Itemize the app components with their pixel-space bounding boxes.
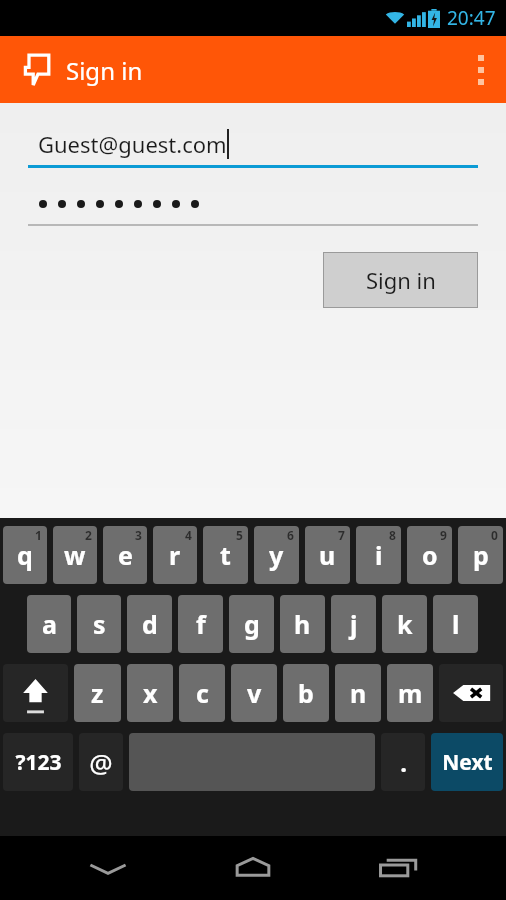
button[interactable]: p: [458, 526, 503, 584]
button[interactable]: f: [178, 595, 223, 653]
staticText: o: [422, 538, 438, 572]
button[interactable]: m: [387, 664, 433, 722]
staticText: t: [220, 538, 231, 572]
staticText: r: [169, 538, 181, 572]
button[interactable]: Backspace: [439, 664, 503, 722]
button[interactable]: k: [382, 595, 427, 653]
button[interactable]: a: [27, 595, 71, 653]
staticText: 2: [85, 527, 92, 543]
button[interactable]: r: [153, 526, 197, 584]
button[interactable]: @: [79, 733, 123, 791]
button[interactable]: w: [53, 526, 97, 584]
staticText: 0: [491, 527, 498, 543]
staticText: j: [350, 607, 358, 641]
staticText: 7: [338, 527, 345, 543]
staticText: 20:47: [447, 5, 496, 31]
staticText: 1: [35, 527, 42, 543]
button[interactable]: z: [74, 664, 121, 722]
button[interactable]: b: [283, 664, 329, 722]
staticText: 9: [440, 527, 447, 543]
staticText: m: [398, 676, 423, 710]
button[interactable]: ?123: [3, 733, 73, 791]
button[interactable]: Next: [431, 733, 503, 791]
button[interactable]: u: [305, 526, 350, 584]
button[interactable]: y: [254, 526, 299, 584]
button[interactable]: q: [3, 526, 47, 584]
staticText: Sign in: [366, 265, 436, 295]
staticText: ?123: [15, 748, 62, 777]
staticText: @: [89, 745, 113, 780]
staticText: y: [269, 538, 284, 572]
button[interactable]: Recents: [361, 836, 437, 900]
button[interactable]: d: [127, 595, 172, 653]
staticText: h: [294, 607, 311, 641]
button[interactable]: v: [231, 664, 277, 722]
button[interactable]: j: [331, 595, 376, 653]
staticText: q: [17, 538, 33, 572]
staticText: a: [42, 607, 57, 641]
button[interactable]: o: [407, 526, 452, 584]
staticText: i: [375, 538, 383, 572]
button[interactable]: t: [203, 526, 248, 584]
staticText: Sign in: [66, 54, 143, 87]
button[interactable]: [28, 184, 478, 226]
staticText: z: [91, 676, 104, 710]
staticText: s: [93, 607, 106, 641]
staticText: k: [397, 607, 413, 641]
staticText: e: [118, 538, 133, 572]
staticText: .: [400, 746, 407, 779]
staticText: x: [143, 676, 158, 710]
staticText: v: [247, 676, 262, 710]
staticText: l: [452, 607, 460, 641]
button[interactable]: Guest@guest.com: [28, 123, 478, 168]
staticText: n: [350, 676, 367, 710]
button[interactable]: Sign in: [324, 253, 477, 307]
button[interactable]: Shift: [3, 664, 68, 722]
button[interactable]: x: [127, 664, 173, 722]
staticText: c: [196, 676, 209, 710]
button[interactable]: g: [229, 595, 274, 653]
button[interactable]: e: [103, 526, 147, 584]
staticText: w: [64, 538, 86, 572]
button[interactable]: l: [433, 595, 478, 653]
button[interactable]: Hide keyboard: [70, 836, 146, 900]
button[interactable]: i: [356, 526, 401, 584]
staticText: u: [319, 538, 336, 572]
button[interactable]: Home: [215, 836, 291, 900]
staticText: p: [473, 538, 489, 572]
staticText: Guest@guest.com: [38, 129, 227, 159]
staticText: g: [244, 607, 260, 641]
staticText: 6: [287, 527, 294, 543]
staticText: 5: [236, 527, 243, 543]
staticText: Next: [442, 748, 493, 777]
button[interactable]: c: [179, 664, 225, 722]
button[interactable]: More options: [456, 36, 506, 103]
button[interactable]: n: [335, 664, 381, 722]
staticText: 3: [135, 527, 142, 543]
staticText: 4: [185, 527, 192, 543]
staticText: 8: [389, 527, 396, 543]
button[interactable]: s: [77, 595, 121, 653]
button[interactable]: h: [280, 595, 325, 653]
staticText: d: [142, 607, 158, 641]
staticText: f: [196, 607, 206, 641]
staticText: b: [298, 676, 314, 710]
button[interactable]: .: [381, 733, 425, 791]
